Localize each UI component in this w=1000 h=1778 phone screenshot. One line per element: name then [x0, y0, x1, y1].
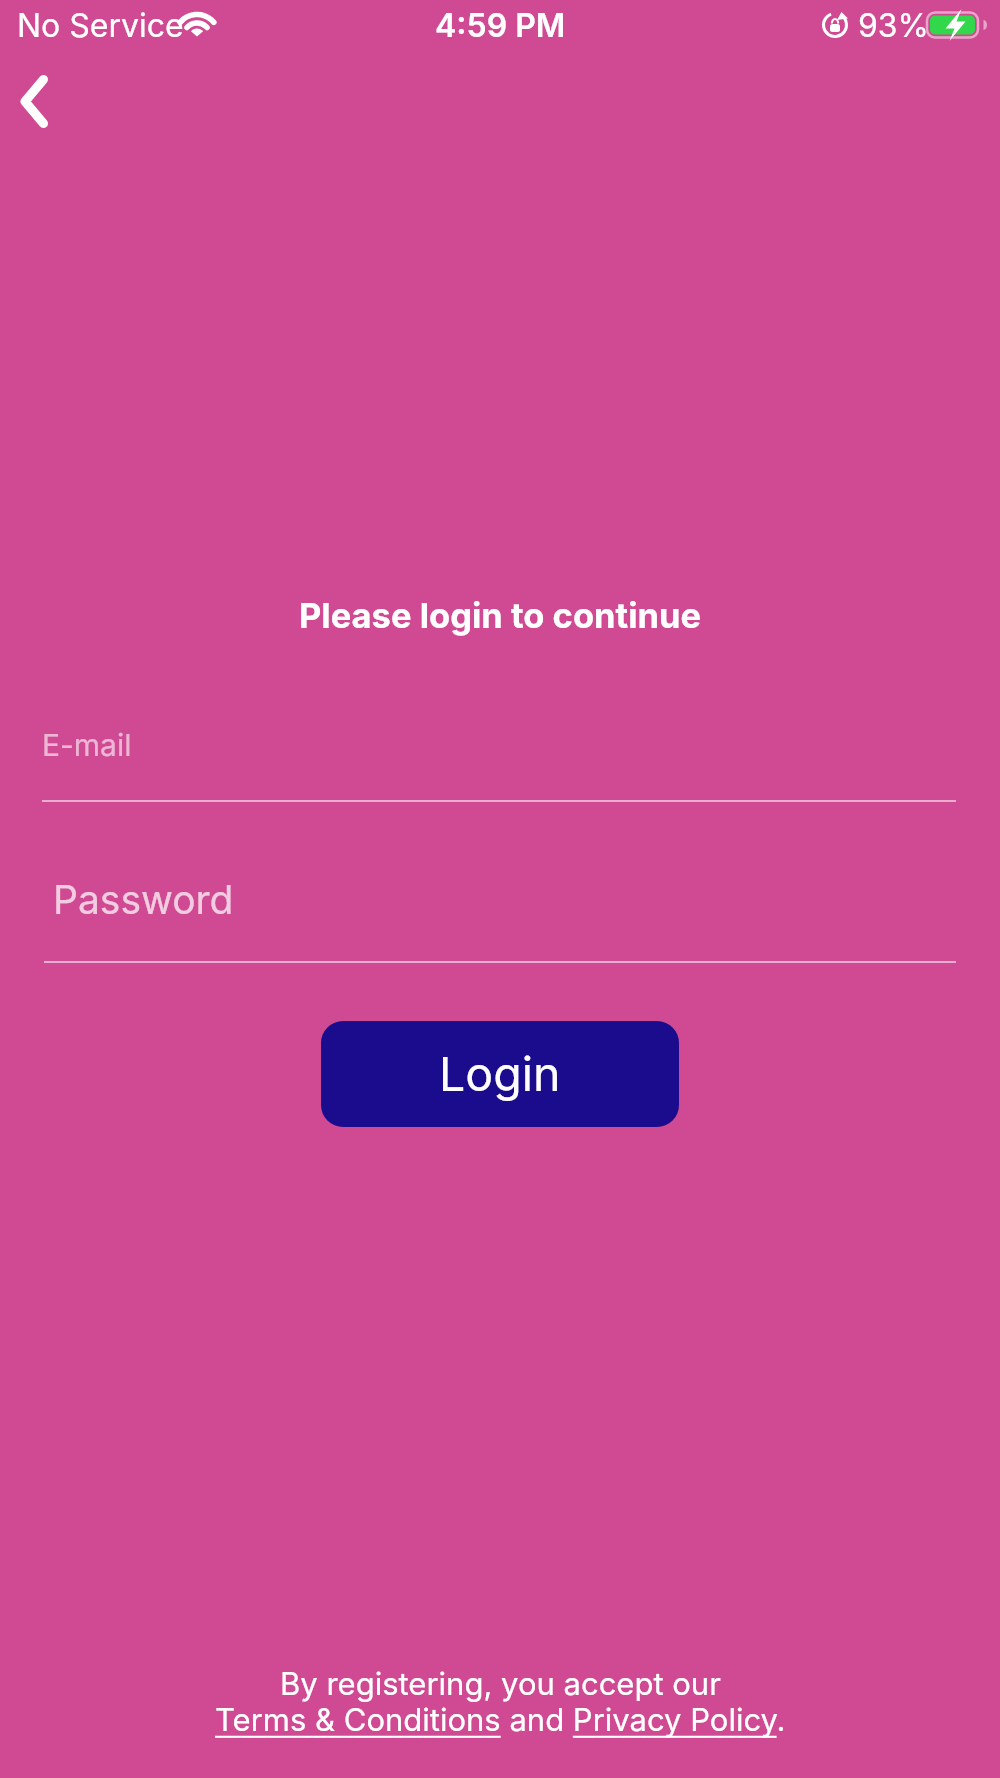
button[interactable]: Password	[44, 848, 956, 963]
staticText: No Service	[17, 6, 184, 45]
staticText: E-mail	[42, 727, 132, 763]
staticText: Login	[439, 1046, 561, 1102]
button[interactable]: E-mail	[42, 700, 956, 802]
staticText: Please login to continue	[299, 595, 702, 637]
button[interactable]: Login	[321, 1021, 679, 1127]
button[interactable]	[6, 66, 70, 138]
staticText: 4:59 PM	[435, 6, 566, 45]
staticText: By registering, you accept our	[280, 1665, 721, 1703]
staticText: Terms & Conditions and Privacy Policy.	[215, 1701, 786, 1739]
staticText: 93%	[858, 6, 930, 45]
button[interactable]: Terms & Conditions and Privacy Policy.	[215, 1696, 786, 1744]
staticText: Password	[53, 876, 234, 923]
